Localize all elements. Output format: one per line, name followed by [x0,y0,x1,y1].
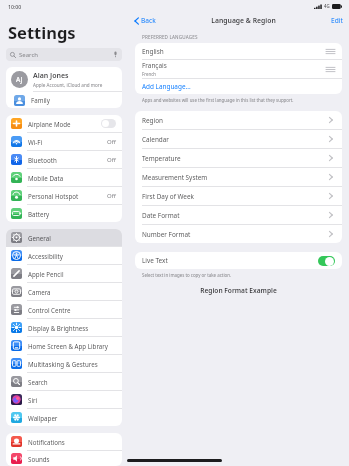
button[interactable]: Calendar [142,130,335,148]
staticText: Live Text [142,256,168,265]
staticText: Off [107,156,116,164]
button[interactable]: Bluetooth [6,151,122,169]
button[interactable]: Home Screen & App Library [6,337,122,355]
staticText: Control Centre [28,306,116,314]
staticText: Camera [28,288,116,296]
staticText: Search [19,51,113,59]
staticText: Wi-Fi [28,138,107,146]
staticText: Multitasking & Gestures [28,360,116,368]
staticText: Display & Brightness [28,324,116,332]
staticText: English [142,47,164,56]
staticText: Accessibility [28,252,116,260]
button[interactable]: Battery [6,205,122,222]
staticText: Notifications [28,438,116,446]
staticText: 10:00 [8,3,22,10]
button[interactable] [318,256,335,266]
staticText: Region Format Example [135,286,342,295]
staticText: Temperature [142,154,181,163]
button[interactable]: Temperature [142,149,335,167]
button[interactable]: Search [10,48,118,61]
button[interactable]: Sounds [6,451,122,466]
button[interactable]: Airplane Mode [6,115,122,133]
staticText: Region [142,116,163,125]
staticText: Mobile Data [28,174,116,182]
staticText: Apple Pencil [28,270,116,278]
button[interactable]: Camera [6,283,122,301]
button[interactable]: Date Format [142,206,335,224]
staticText: Select text in images to copy or take ac… [142,272,232,278]
button[interactable]: Mobile Data [6,169,122,187]
staticText: Language & Region [156,16,331,25]
staticText: Date Format [142,211,180,220]
staticText: Sounds [28,455,116,463]
staticText: PREFERRED LANGUAGES [142,34,198,40]
staticText: Number Format [142,230,191,239]
staticText: Personal Hotspot [28,192,107,200]
staticText: General [28,234,116,242]
staticText: Back [141,16,156,25]
button[interactable]: Accessibility [6,247,122,265]
button[interactable]: General [6,229,122,247]
staticText: Edit [331,16,343,25]
staticText: Alan Jones [33,71,69,81]
staticText: Search [28,378,116,386]
staticText: Add Language... [142,82,191,91]
button[interactable]: Control Centre [6,301,122,319]
button[interactable]: Personal Hotspot [6,187,122,205]
staticText: 4G [324,3,330,9]
button[interactable]: Wallpaper [6,409,122,426]
staticText: Measurement System [142,173,208,182]
button[interactable]: Add Language... [142,79,335,94]
staticText: Apple Account, iCloud and more [33,82,103,88]
staticText: Calendar [142,135,169,144]
button[interactable]: Français [142,60,335,78]
staticText: Bluetooth [28,156,107,164]
staticText: French [142,71,157,77]
staticText: Wallpaper [28,414,116,422]
button[interactable]: Search [6,373,122,391]
button[interactable]: Back [134,16,156,25]
button[interactable]: Apple Pencil [6,265,122,283]
button[interactable]: Notifications [6,433,122,451]
button[interactable]: Edit [331,16,343,25]
staticText: Battery [28,210,116,218]
button[interactable]: Measurement System [142,168,335,186]
button[interactable]: Family [14,92,122,108]
staticText: Apps and websites will use the first lan… [142,97,294,103]
staticText: Off [107,192,116,200]
button[interactable]: Display & Brightness [6,319,122,337]
button[interactable] [101,119,116,128]
staticText: Airplane Mode [28,120,101,128]
button[interactable]: Multitasking & Gestures [6,355,122,373]
staticText: Off [107,138,116,146]
staticText: First Day of Week [142,192,194,201]
staticText: AJ [16,75,23,84]
button[interactable]: English [142,43,335,59]
button[interactable]: AJ [11,67,117,91]
button[interactable]: Live Text [142,252,335,269]
staticText: Home Screen & App Library [28,342,116,350]
staticText: Family [31,96,50,104]
staticText: Siri [28,396,116,404]
button[interactable]: First Day of Week [142,187,335,205]
staticText: Français [142,61,167,70]
button[interactable]: Number Format [142,225,335,243]
button[interactable]: Siri [6,391,122,409]
button[interactable]: Region [142,111,335,129]
button[interactable]: Wi-Fi [6,133,122,151]
staticText: Settings [8,21,76,43]
